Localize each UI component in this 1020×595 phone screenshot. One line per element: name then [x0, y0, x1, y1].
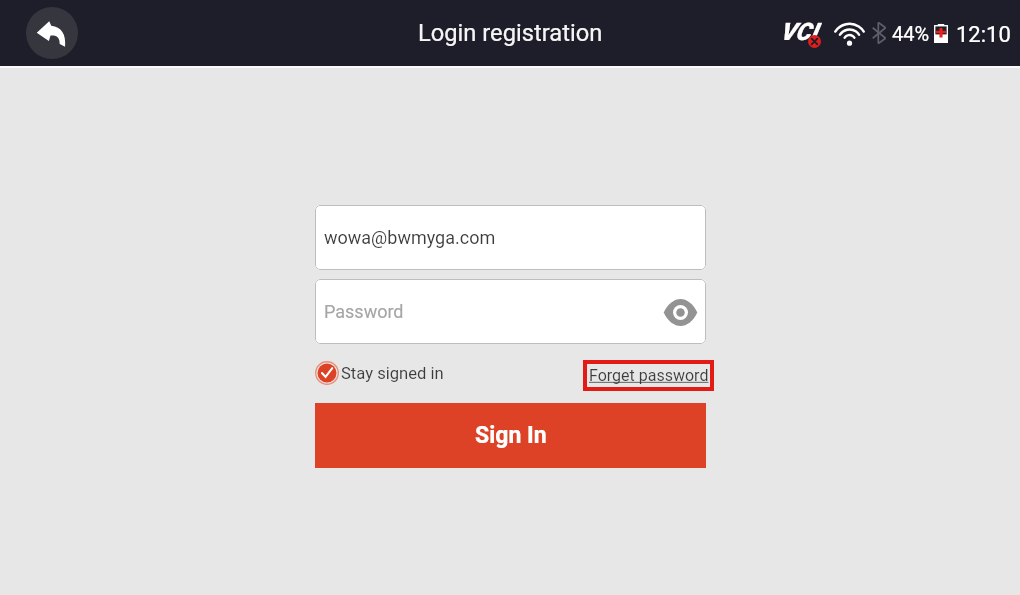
staticText: Password	[324, 301, 404, 322]
staticText: Forget password	[589, 366, 709, 385]
button[interactable]: Sign In	[315, 403, 706, 468]
staticText: 12:10	[956, 22, 1011, 48]
staticText: 44%	[892, 22, 930, 45]
staticText: wowa@bwmyga.com	[324, 227, 496, 248]
button[interactable]: Show password	[658, 290, 702, 334]
staticText: Sign In	[475, 422, 547, 449]
staticText: VCI	[780, 18, 818, 46]
staticText: Stay signed in	[341, 364, 444, 383]
button[interactable]: Back	[26, 7, 78, 59]
button[interactable]: Forget password	[583, 360, 714, 391]
staticText: Login registration	[418, 19, 603, 47]
button[interactable]: Password	[315, 279, 706, 344]
button[interactable]: wowa@bwmyga.com	[315, 205, 706, 270]
button[interactable]: Stay signed in	[315, 358, 444, 388]
